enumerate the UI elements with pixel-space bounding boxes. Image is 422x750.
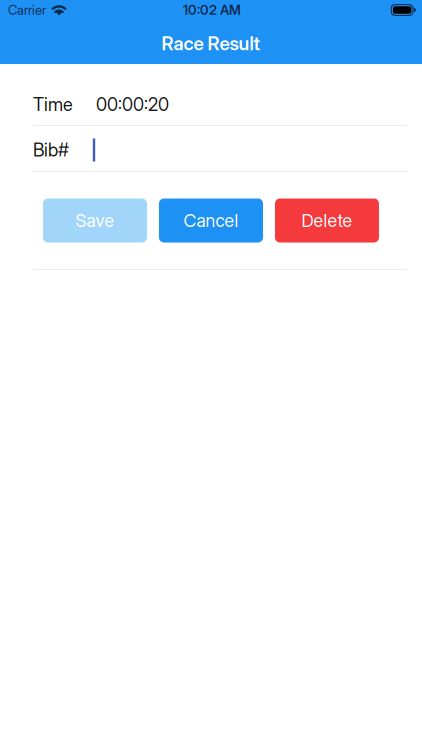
button[interactable]: Save: [43, 198, 147, 242]
staticText: Time: [33, 94, 73, 115]
button[interactable]: Cancel: [159, 198, 263, 242]
staticText: Carrier: [8, 2, 46, 18]
staticText: 00:00:20: [96, 94, 169, 115]
staticText: 10:02 AM: [183, 2, 241, 18]
staticText: Delete: [301, 210, 352, 231]
staticText: Race Result: [161, 32, 260, 55]
staticText: Bib#: [33, 139, 69, 161]
button[interactable]: Delete: [275, 198, 379, 242]
staticText: Cancel: [183, 210, 238, 231]
staticText: Save: [75, 210, 114, 231]
button[interactable]: Bib number: [93, 129, 407, 171]
